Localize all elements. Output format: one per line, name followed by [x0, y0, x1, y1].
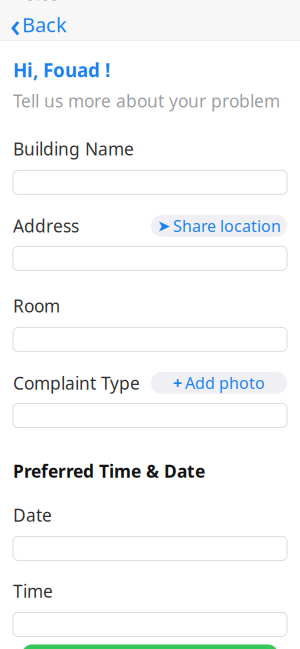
staticText: Back — [22, 11, 67, 38]
staticText: ‹ — [10, 3, 20, 46]
button[interactable]: + — [151, 372, 287, 394]
button[interactable]: ➤ — [151, 215, 287, 237]
staticText: Room — [13, 294, 60, 317]
button[interactable]: ‹ — [0, 0, 79, 50]
staticText: Add photo — [185, 372, 265, 393]
staticText: Building Name — [13, 137, 134, 160]
staticText: Date — [13, 503, 52, 526]
staticText: Hi, Fouad ! — [13, 57, 110, 82]
staticText: Tell us more about your problem — [13, 89, 280, 112]
staticText: + — [173, 372, 182, 393]
staticText: 3:59 — [26, 0, 61, 5]
staticText: ➤ — [157, 217, 170, 235]
button[interactable]: Submit — [13, 644, 287, 646]
staticText: Complaint Type — [13, 371, 140, 394]
staticText: Share location — [173, 215, 281, 236]
staticText: Address — [13, 214, 79, 237]
staticText: Preferred Time & Date — [13, 459, 205, 482]
staticText: Time — [13, 579, 53, 602]
